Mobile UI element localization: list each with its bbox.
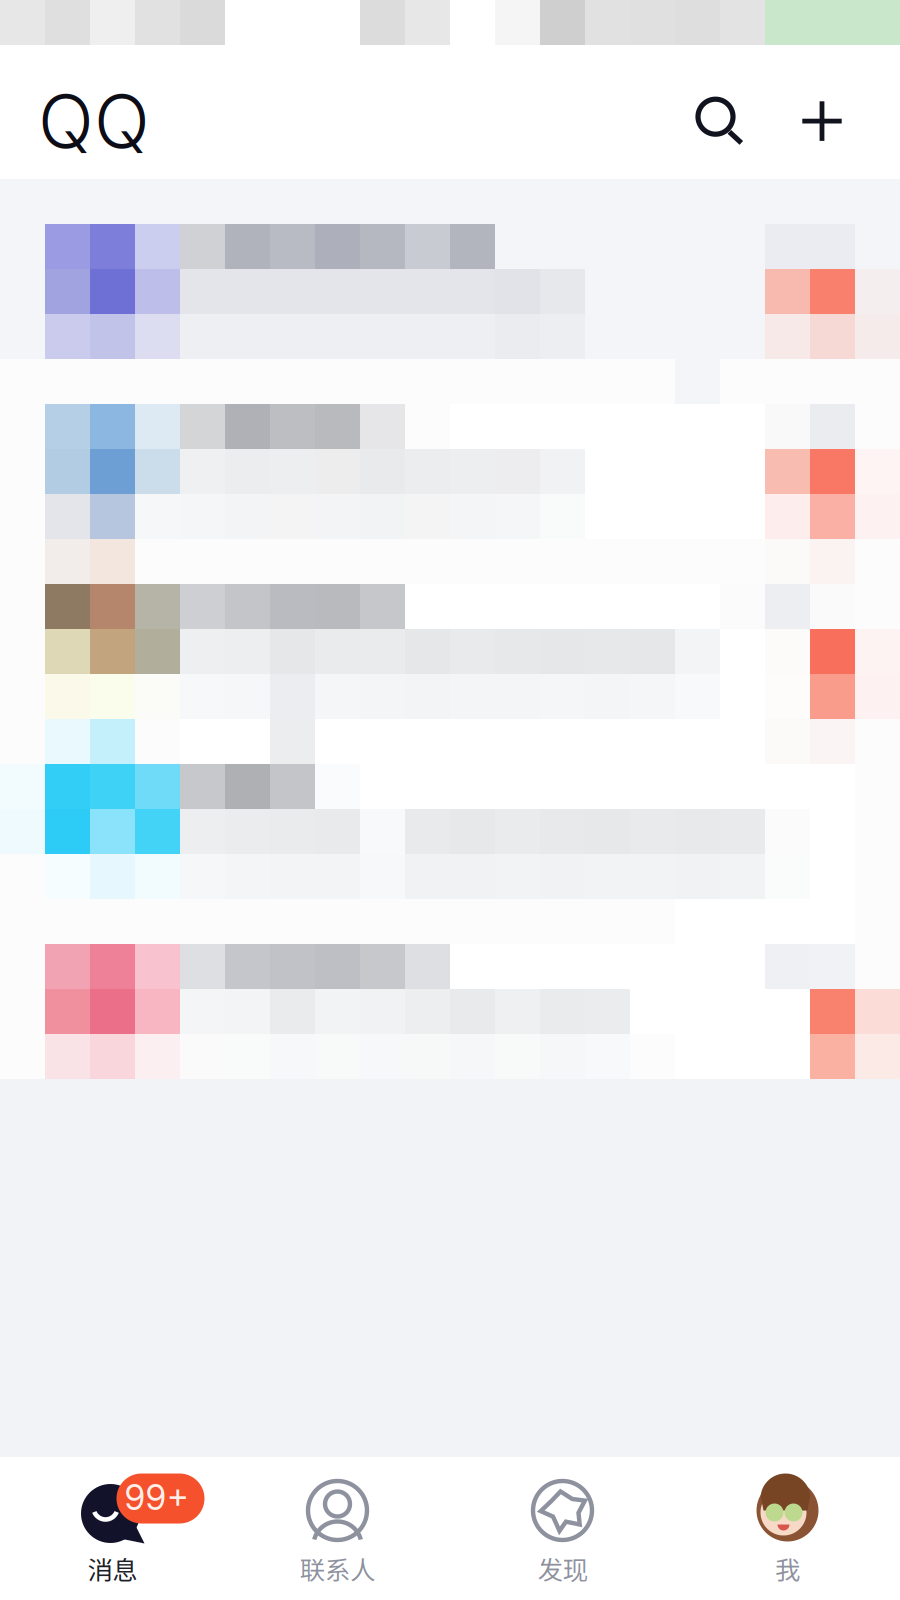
staticText: 我 — [775, 1550, 800, 1587]
staticText: 发现 — [537, 1550, 587, 1587]
staticText: QQ — [38, 77, 150, 165]
button[interactable]: 我 — [675, 1457, 900, 1600]
staticText: 联系人 — [300, 1550, 375, 1587]
button[interactable]: 联系人 — [225, 1457, 450, 1600]
staticText: 消息 — [87, 1550, 137, 1587]
button[interactable]: New chat — [780, 70, 864, 154]
button[interactable]: 发现 — [450, 1457, 675, 1600]
button[interactable]: Search — [670, 70, 754, 154]
staticText: 99+ — [124, 1476, 188, 1518]
button[interactable]: 99+ — [0, 1457, 225, 1600]
